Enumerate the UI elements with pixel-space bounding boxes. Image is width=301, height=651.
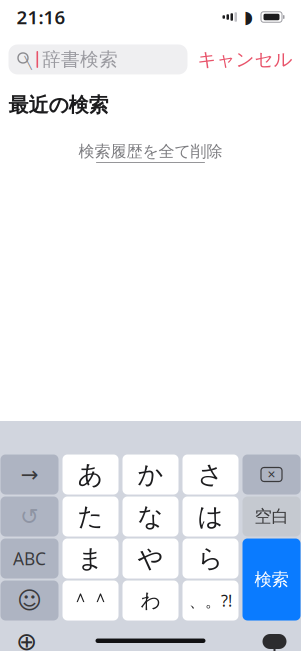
staticText: さ	[197, 459, 223, 490]
staticText: ABC	[13, 547, 46, 570]
button[interactable]: な	[122, 496, 178, 536]
staticText: ╲	[24, 56, 31, 70]
staticText: 辞書検索	[42, 48, 118, 71]
staticText: →	[20, 462, 38, 487]
button[interactable]: Dictation	[258, 628, 290, 651]
button[interactable]: Next candidate	[0, 454, 58, 494]
staticText: 検索	[254, 569, 288, 590]
button[interactable]: 、。?!	[182, 580, 238, 620]
staticText: 空白	[254, 506, 288, 527]
staticText: わ	[140, 588, 160, 613]
staticText: 最近の検索	[8, 93, 108, 117]
button[interactable]: Undo	[0, 496, 58, 536]
button[interactable]: ＾＾	[62, 580, 118, 620]
staticText: ⊕	[16, 627, 37, 651]
staticText: 、。?!	[189, 590, 232, 611]
staticText: ま	[77, 543, 103, 574]
staticText: ＾＾	[70, 588, 110, 613]
staticText: な	[137, 501, 163, 532]
staticText: は	[197, 501, 223, 532]
staticText: や	[137, 543, 163, 574]
staticText: あ	[77, 459, 103, 490]
button[interactable]: さ	[182, 454, 238, 494]
button[interactable]: ま	[62, 538, 118, 578]
staticText: 検索履歴を全て削除	[78, 141, 222, 161]
button[interactable]: あ	[62, 454, 118, 494]
button[interactable]: Change keyboard	[10, 628, 42, 651]
button[interactable]: は	[182, 496, 238, 536]
button[interactable]: Switch to ABC	[0, 538, 58, 578]
button[interactable]: か	[122, 454, 178, 494]
button[interactable]: わ	[122, 580, 178, 620]
staticText: ☺	[17, 587, 42, 614]
staticText: ◗	[244, 7, 253, 27]
button[interactable]: Search	[242, 538, 300, 620]
button[interactable]: Delete	[242, 454, 300, 494]
staticText: た	[77, 501, 103, 532]
button[interactable]: た	[62, 496, 118, 536]
staticText: か	[137, 459, 163, 490]
button[interactable]: Emoji	[0, 580, 58, 620]
staticText: キャンセル	[197, 48, 292, 71]
button[interactable]: Space	[242, 496, 300, 536]
button[interactable]: キャンセル	[197, 42, 292, 77]
staticText: ↺	[20, 504, 39, 529]
staticText: ✕	[267, 468, 276, 480]
button[interactable]: や	[122, 538, 178, 578]
button[interactable]: 検索履歴を全て削除	[78, 137, 222, 167]
button[interactable]: ら	[182, 538, 238, 578]
staticText: ら	[197, 543, 223, 574]
staticText: 21:16	[16, 5, 65, 29]
